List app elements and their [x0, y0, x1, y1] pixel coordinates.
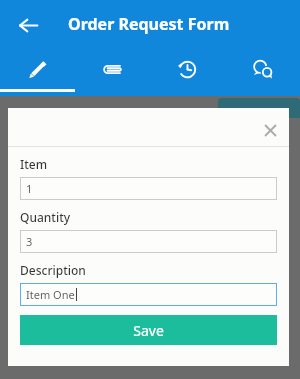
button[interactable]: Back [14, 11, 42, 39]
button[interactable]: Save [20, 315, 277, 345]
button[interactable]: Attachments [75, 52, 150, 92]
button[interactable]: Edit [0, 52, 75, 92]
button[interactable]: Close [257, 117, 283, 143]
button[interactable]: Comments [225, 52, 300, 92]
staticText: Description [20, 262, 86, 278]
button[interactable]: 1 [20, 177, 277, 200]
staticText: Item One [26, 287, 75, 302]
staticText: Item [20, 156, 48, 172]
button[interactable]: Item One [20, 283, 277, 306]
staticText: Order Request Form [68, 13, 230, 35]
staticText: 3 [26, 234, 33, 249]
staticText: Quantity [20, 209, 71, 225]
staticText: Save [133, 321, 164, 340]
button[interactable]: 3 [20, 230, 277, 253]
button[interactable]: History [150, 52, 225, 92]
staticText: 1 [26, 181, 33, 196]
